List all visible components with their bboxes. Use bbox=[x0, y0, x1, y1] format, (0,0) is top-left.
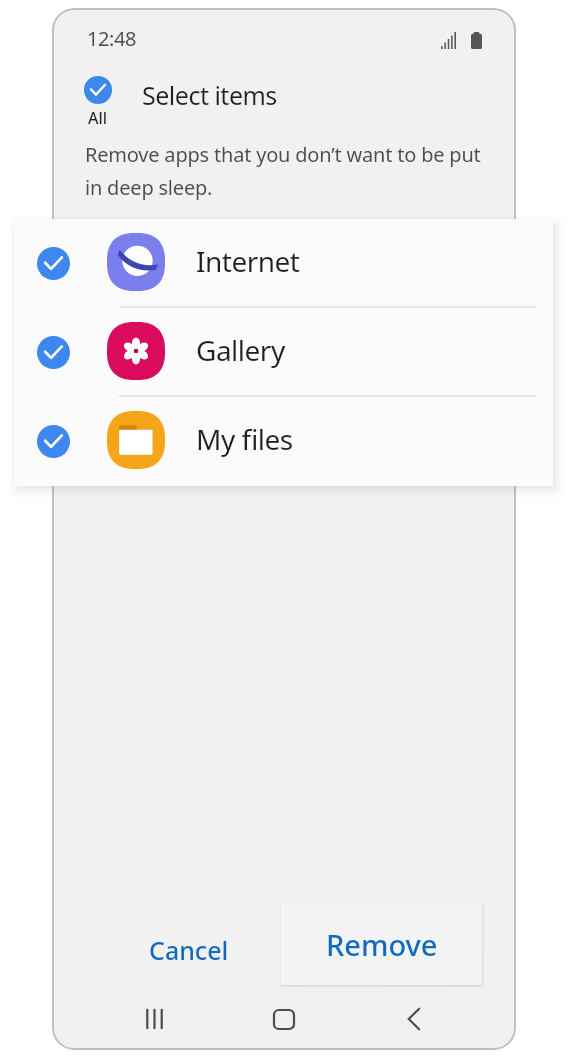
button[interactable]: Back bbox=[384, 990, 444, 1050]
staticText: Gallery bbox=[196, 331, 285, 369]
staticText: Cancel bbox=[149, 933, 229, 967]
button[interactable]: Cancel bbox=[131, 919, 247, 981]
staticText: Select items bbox=[142, 78, 277, 112]
staticText: 12:48 bbox=[87, 25, 137, 52]
staticText: My files bbox=[196, 420, 293, 458]
staticText: Remove apps that you don’t want to be pu… bbox=[85, 141, 481, 201]
button[interactable]: Gallery bbox=[14, 308, 553, 397]
button[interactable]: Recent apps bbox=[124, 990, 184, 1050]
staticText: Internet bbox=[196, 242, 300, 280]
button[interactable]: Remove bbox=[281, 903, 482, 985]
staticText: Remove bbox=[326, 925, 438, 964]
button[interactable]: My files bbox=[14, 397, 553, 486]
button[interactable]: Internet bbox=[14, 219, 553, 308]
staticText: All bbox=[88, 107, 108, 129]
button[interactable]: All bbox=[84, 76, 112, 129]
button[interactable]: Home bbox=[254, 990, 314, 1050]
